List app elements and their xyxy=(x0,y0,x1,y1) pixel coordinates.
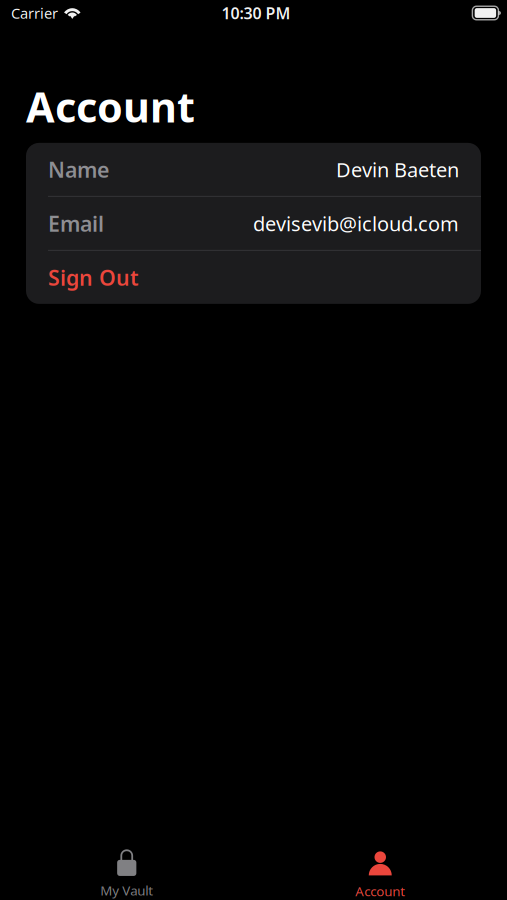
staticText: Name xyxy=(48,155,109,183)
staticText: Email xyxy=(48,209,104,237)
staticText: Carrier xyxy=(11,3,58,23)
button[interactable]: Account xyxy=(253,850,507,900)
button[interactable]: My Vault xyxy=(0,850,253,900)
staticText: Account xyxy=(355,882,405,900)
staticText: devisevib@icloud.com xyxy=(253,210,459,237)
staticText: My Vault xyxy=(100,881,153,899)
staticText: Devin Baeten xyxy=(336,156,459,183)
staticText: Sign Out xyxy=(48,263,139,291)
staticText: Account xyxy=(26,79,195,134)
button[interactable]: Sign Out xyxy=(26,251,481,304)
staticText: 10:30 PM xyxy=(221,2,290,24)
button[interactable]: Name xyxy=(26,143,481,196)
button[interactable]: Email xyxy=(26,197,481,250)
